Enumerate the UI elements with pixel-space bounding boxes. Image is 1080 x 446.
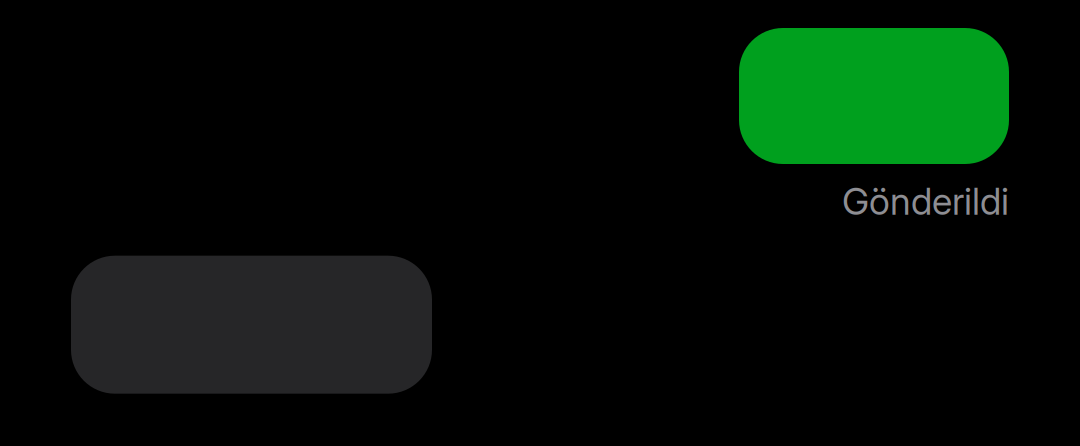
button[interactable]: Sent message <box>739 28 1009 164</box>
staticText: Gönderildi <box>842 179 1009 224</box>
button[interactable]: Received message <box>71 256 432 394</box>
